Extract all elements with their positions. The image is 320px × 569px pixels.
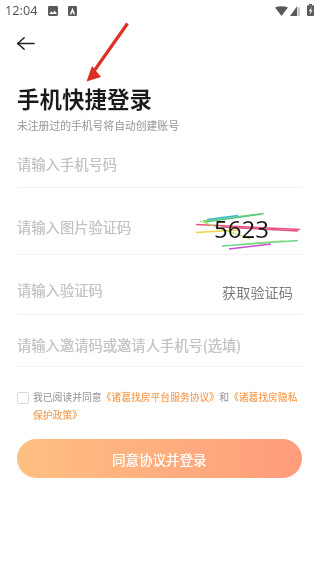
button[interactable]: Refresh captcha [198, 212, 300, 250]
staticText: 未注册过的手机号将自动创建账号 [17, 117, 179, 133]
staticText: 我已阅读并同意《诸葛找房平台服务协议》和《诸葛找房隐私保护政策》 [33, 390, 300, 422]
button[interactable]: 请输入手机号码 [17, 146, 303, 181]
staticText: 请输入验证码 [17, 279, 103, 300]
staticText: 获取验证码 [222, 282, 293, 303]
button[interactable]: 获取验证码 [212, 277, 302, 307]
staticText: 12:04 [5, 1, 38, 18]
staticText: 同意协议并登录 [112, 449, 207, 469]
button[interactable]: 请输入邀请码或邀请人手机号(选填) [17, 327, 303, 362]
button[interactable]: 请输入验证码 [17, 272, 303, 307]
button[interactable]: 请输入图片验证码 [17, 209, 303, 244]
staticText: 手机快捷登录 [17, 82, 153, 115]
button[interactable]: 同意协议并登录 [17, 439, 302, 478]
button[interactable]: Back [11, 29, 39, 57]
staticText: 请输入邀请码或邀请人手机号(选填) [17, 334, 242, 355]
staticText: 请输入手机号码 [17, 153, 118, 174]
button[interactable]: Agree to terms checkbox [17, 392, 29, 404]
staticText: 请输入图片验证码 [17, 216, 132, 237]
staticText: 5623 [214, 212, 269, 245]
